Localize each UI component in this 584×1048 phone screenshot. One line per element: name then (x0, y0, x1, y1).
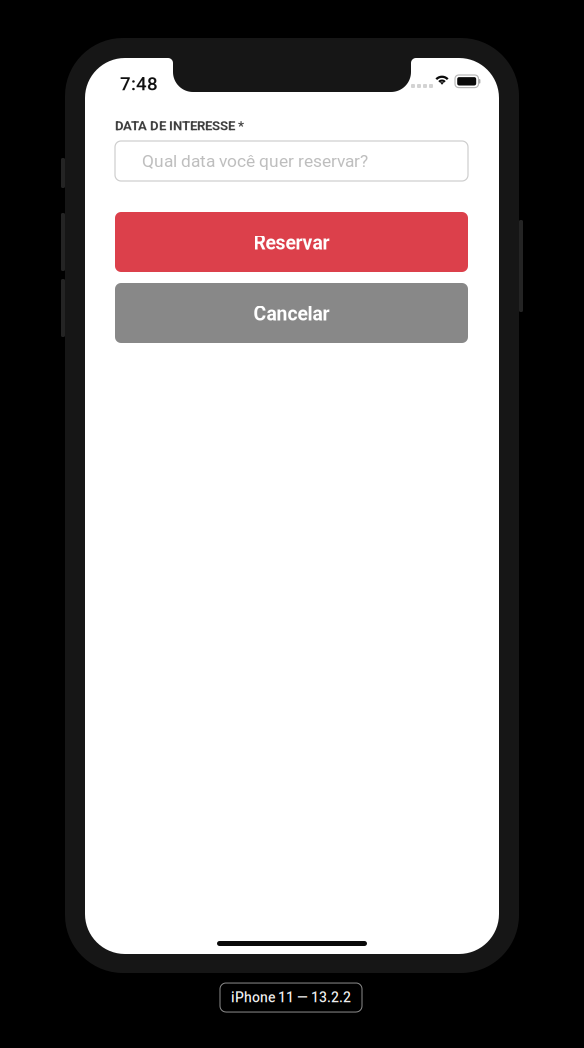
staticText: Cancelar (253, 303, 329, 325)
staticText: 7:48 (120, 73, 158, 95)
staticText: iPhone 11 — 13.2.2 (231, 989, 351, 1006)
button[interactable]: Qual data você quer reservar? (115, 141, 468, 181)
staticText: Qual data você quer reservar? (142, 151, 368, 171)
button[interactable]: Cancelar (115, 283, 468, 343)
button[interactable]: Reservar (115, 212, 468, 272)
staticText: Reservar (253, 232, 329, 254)
staticText: DATA DE INTERESSE * (115, 118, 244, 133)
